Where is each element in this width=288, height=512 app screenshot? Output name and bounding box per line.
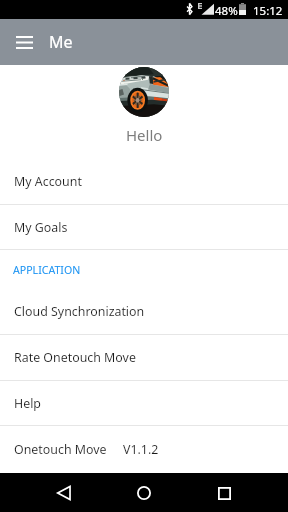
staticText: Hello xyxy=(126,125,163,145)
staticText: Me xyxy=(49,31,73,53)
staticText: Onetouch Move xyxy=(14,441,107,458)
staticText: Rate Onetouch Move xyxy=(14,349,136,366)
button[interactable]: Help xyxy=(0,381,288,425)
button[interactable]: My Account xyxy=(0,158,288,204)
button[interactable]: Profile picture xyxy=(119,67,169,117)
button[interactable]: Back xyxy=(46,475,82,511)
staticText: V1.1.2 xyxy=(123,441,159,458)
button[interactable]: Cloud Synchronization xyxy=(0,289,288,334)
staticText: Help xyxy=(14,395,41,412)
staticText: My Goals xyxy=(14,219,68,236)
button[interactable]: Open navigation menu xyxy=(10,28,38,56)
button[interactable]: Rate Onetouch Move xyxy=(0,335,288,380)
staticText: Cloud Synchronization xyxy=(14,303,145,320)
button[interactable]: Recent apps xyxy=(206,475,242,511)
button[interactable]: My Goals xyxy=(0,205,288,249)
staticText: APPLICATION xyxy=(13,263,81,277)
staticText: 15:12 xyxy=(253,3,283,19)
button[interactable]: Home xyxy=(126,475,162,511)
staticText: My Account xyxy=(14,173,82,190)
staticText: 48% xyxy=(215,3,238,19)
button[interactable]: Onetouch Move xyxy=(0,426,288,473)
